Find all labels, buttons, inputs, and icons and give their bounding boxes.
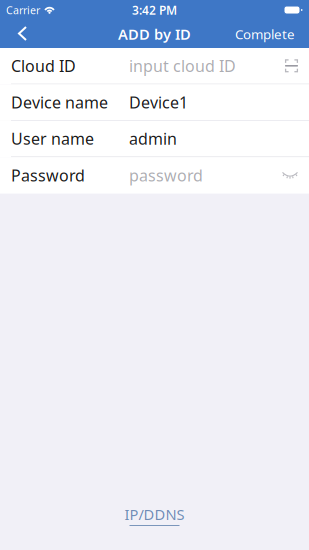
staticText: Carrier xyxy=(6,3,40,17)
button[interactable]: Password xyxy=(0,157,309,194)
staticText: Complete xyxy=(235,25,295,43)
staticText: User name xyxy=(11,128,94,149)
staticText: admin xyxy=(129,128,177,149)
staticText: ADD by ID xyxy=(118,24,191,44)
staticText: Password xyxy=(11,165,85,186)
button[interactable]: User name xyxy=(0,121,309,157)
button[interactable]: Cloud ID xyxy=(0,48,309,84)
staticText: IP/DDNS xyxy=(124,505,184,524)
staticText: 3:42 PM xyxy=(132,2,177,18)
staticText: Device1 xyxy=(129,92,188,113)
staticText: Device name xyxy=(11,92,108,113)
button[interactable]: IP/DDNS xyxy=(116,497,192,534)
staticText: Cloud ID xyxy=(11,55,76,76)
button[interactable]: Device name xyxy=(0,84,309,121)
button[interactable]: Complete xyxy=(223,20,307,48)
staticText: password xyxy=(129,165,203,186)
button[interactable]: Back xyxy=(2,20,46,48)
staticText: input cloud ID xyxy=(129,55,236,76)
